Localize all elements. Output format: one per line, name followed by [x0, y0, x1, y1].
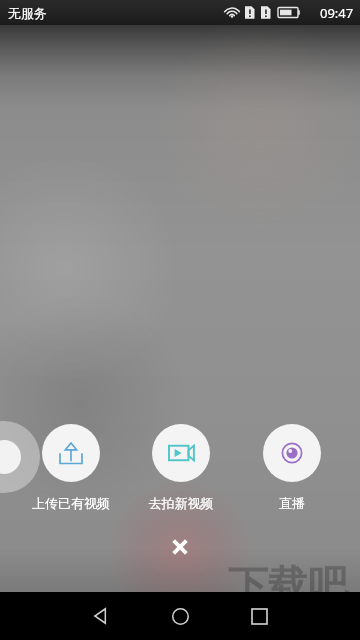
button[interactable]: 主页 [156, 592, 204, 640]
staticText: 上传已有视频 [19, 495, 123, 511]
button[interactable]: 上传已有视频 [19, 424, 123, 524]
staticText: 直播 [240, 495, 344, 511]
staticText: 去拍新视频 [129, 495, 233, 511]
staticText: 无服务 [8, 5, 47, 21]
staticText: 下载吧 [228, 560, 348, 610]
button[interactable]: 去拍新视频 [129, 424, 233, 524]
button[interactable]: 最近任务 [235, 592, 283, 640]
button[interactable]: 关闭 [158, 525, 202, 569]
staticText: www.xiazaiba.com [240, 610, 336, 625]
button[interactable]: 直播 [240, 424, 344, 524]
button[interactable]: 返回 [77, 592, 125, 640]
staticText: 09:47 [320, 4, 354, 22]
